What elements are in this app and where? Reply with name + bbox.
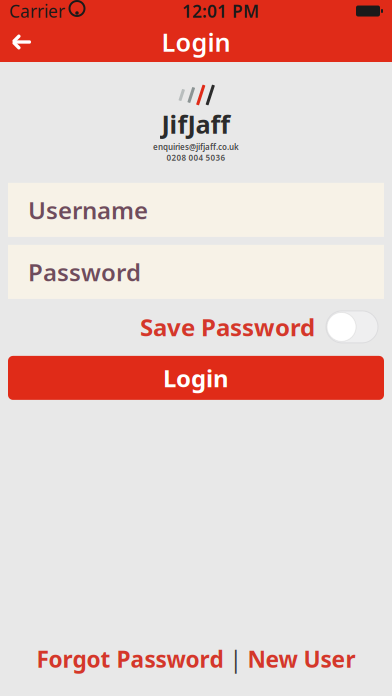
staticText: Login: [161, 25, 230, 59]
staticText: Password: [28, 256, 141, 288]
staticText: Forgot Password: [36, 644, 223, 674]
button[interactable]: Username: [8, 183, 384, 237]
button[interactable]: Login: [8, 356, 384, 400]
staticText: 12:01 PM: [182, 0, 259, 22]
button[interactable]: Forgot Password: [36, 640, 223, 678]
staticText: JifJaff: [161, 107, 230, 141]
button[interactable]: Password: [8, 245, 384, 299]
button[interactable]: New User: [247, 640, 355, 678]
staticText: enquiries@jifjaff.co.uk: [153, 142, 239, 152]
staticText: Save Password: [140, 311, 315, 343]
staticText: New User: [247, 644, 355, 674]
staticText: Login: [163, 362, 229, 394]
button[interactable]: Back: [0, 22, 44, 62]
staticText: Username: [28, 194, 148, 226]
staticText: |: [223, 644, 247, 674]
staticText: 0208 004 5036: [166, 152, 225, 163]
staticText: Carrier: [9, 0, 65, 22]
staticText: [64, 0, 70, 26]
button[interactable]: Save Password: [140, 311, 378, 343]
